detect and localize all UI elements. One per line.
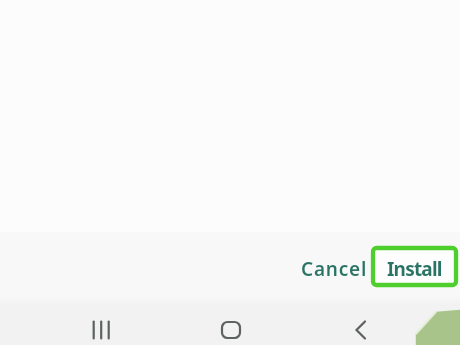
button[interactable]	[215, 314, 247, 345]
button[interactable]: Cancel	[296, 246, 372, 288]
button[interactable]	[345, 314, 377, 345]
button[interactable]: Install	[371, 246, 458, 287]
button[interactable]	[85, 314, 117, 345]
staticText: Cancel	[301, 256, 368, 282]
staticText: Install	[387, 256, 442, 282]
